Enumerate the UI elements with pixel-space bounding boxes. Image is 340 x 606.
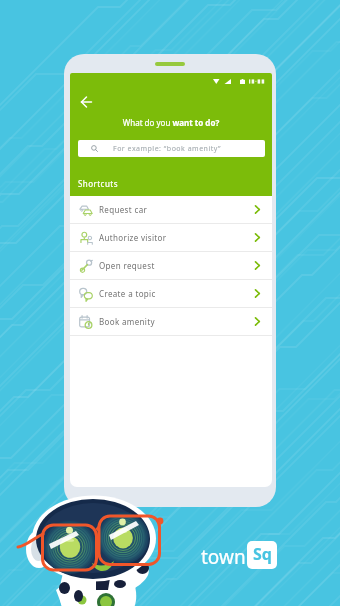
staticText: Sq: [253, 543, 272, 565]
button[interactable]: Create a topic: [70, 280, 272, 308]
button[interactable]: Request car: [70, 196, 272, 224]
button[interactable]: Book amenity: [70, 308, 272, 336]
staticText: town: [201, 544, 246, 570]
staticText: For example: “book amenity”: [113, 144, 222, 154]
staticText: Authorize visitor: [99, 232, 167, 243]
staticText: Shortcuts: [78, 178, 118, 189]
staticText: Book amenity: [99, 316, 155, 327]
staticText: Request car: [99, 204, 148, 215]
staticText: What do you want to do?: [70, 117, 272, 128]
staticText: Open request: [99, 260, 155, 271]
button[interactable]: Authorize visitor: [70, 224, 272, 252]
button[interactable]: Back: [79, 95, 93, 109]
staticText: Create a topic: [99, 288, 156, 299]
button[interactable]: Open request: [70, 252, 272, 280]
button[interactable]: For example: “book amenity”: [78, 140, 265, 157]
